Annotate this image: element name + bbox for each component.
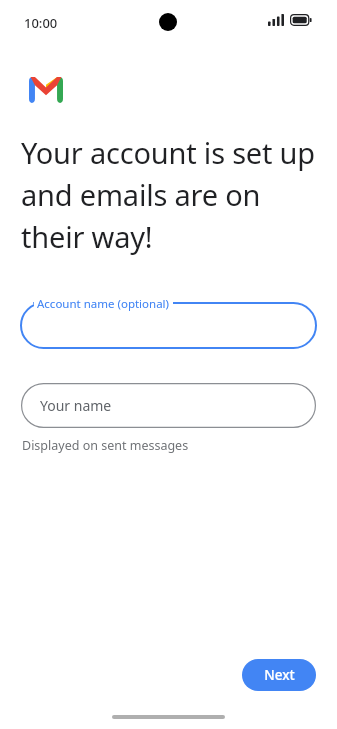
staticText: Your name — [40, 396, 112, 415]
staticText: 10:00 — [24, 14, 58, 32]
button[interactable]: Account name (optional) — [21, 303, 316, 348]
button[interactable]: Your name — [21, 383, 316, 428]
staticText: Next — [264, 666, 295, 684]
button[interactable]: Next — [242, 659, 316, 691]
staticText: Displayed on sent messages — [22, 437, 189, 454]
staticText: Your account is set up and emails are on… — [21, 133, 321, 256]
staticText: Account name (optional) — [37, 296, 170, 312]
